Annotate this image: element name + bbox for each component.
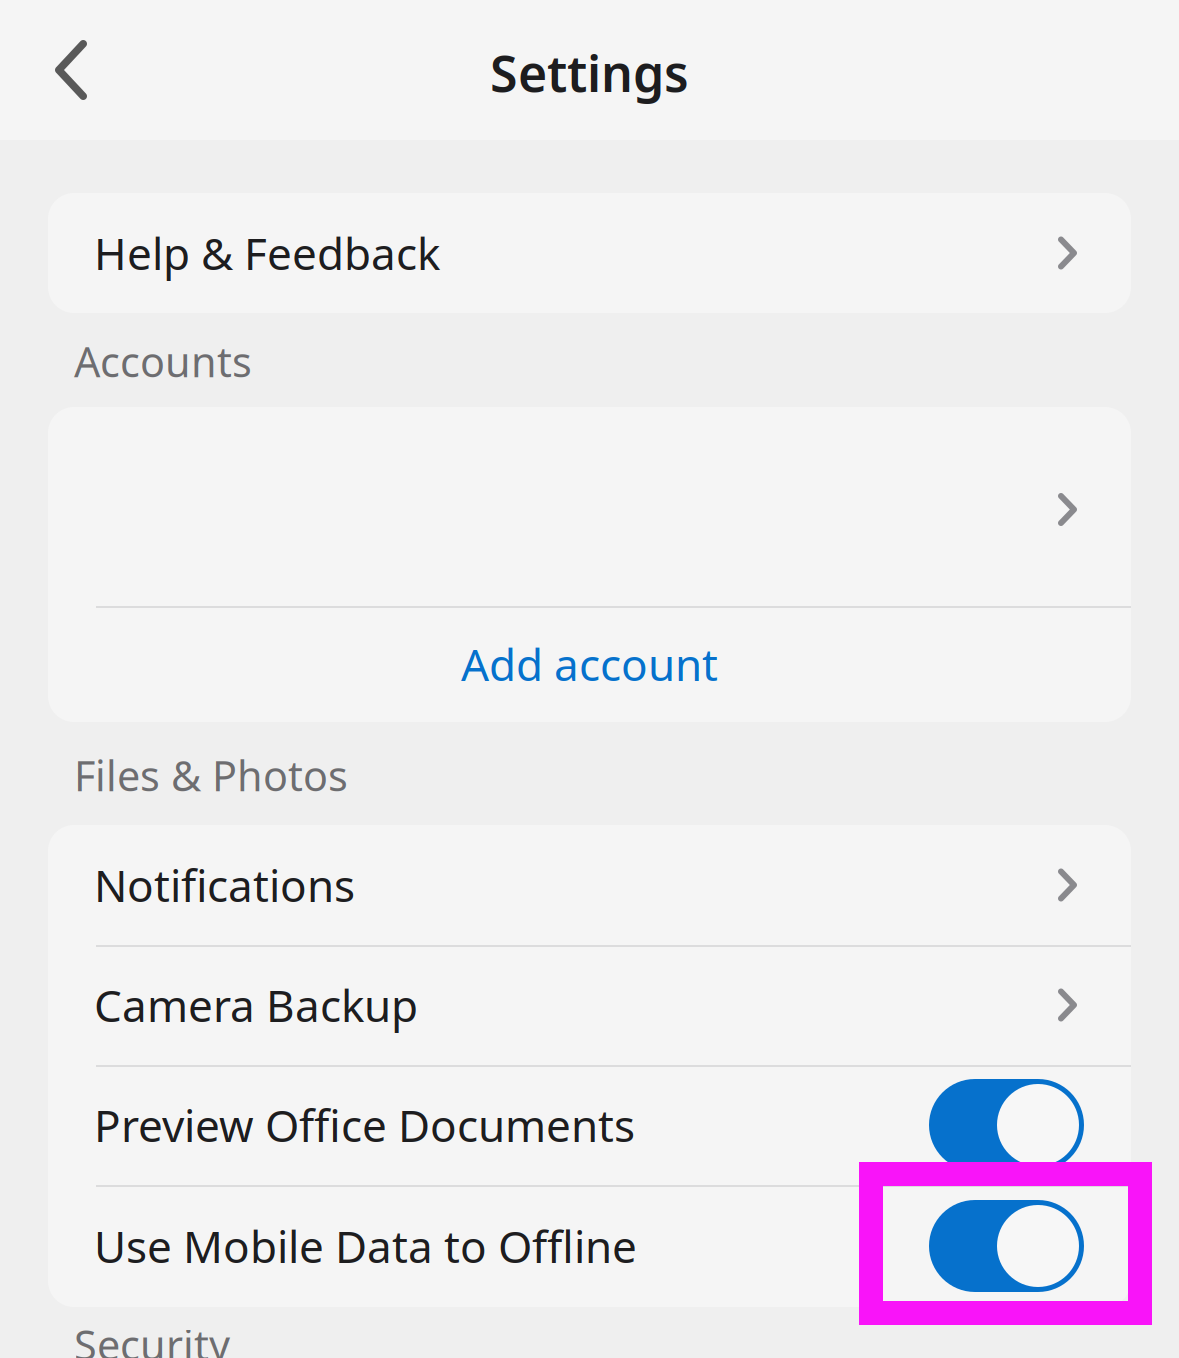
staticText: Use Mobile Data to Offline [94,1216,637,1276]
button[interactable]: Camera Backup [48,945,1131,1065]
button[interactable]: Help & Feedback [48,193,1131,313]
button[interactable]: Use Mobile Data to Offline [929,1200,1084,1292]
button[interactable]: Add account [48,606,1131,722]
button[interactable]: Preview Office Documents [929,1079,1084,1171]
staticText: Security [74,1316,230,1358]
staticText: Add account [461,634,718,694]
staticText: Settings [490,38,689,106]
button[interactable]: Notifications [48,825,1131,945]
button[interactable] [48,407,1131,606]
staticText: Files & Photos [74,747,348,803]
staticText: Accounts [74,333,252,389]
staticText: Camera Backup [94,975,418,1035]
staticText: Help & Feedback [94,223,440,283]
staticText: Preview Office Documents [94,1095,635,1155]
button[interactable]: Back [0,0,143,140]
staticText: Notifications [94,855,355,915]
